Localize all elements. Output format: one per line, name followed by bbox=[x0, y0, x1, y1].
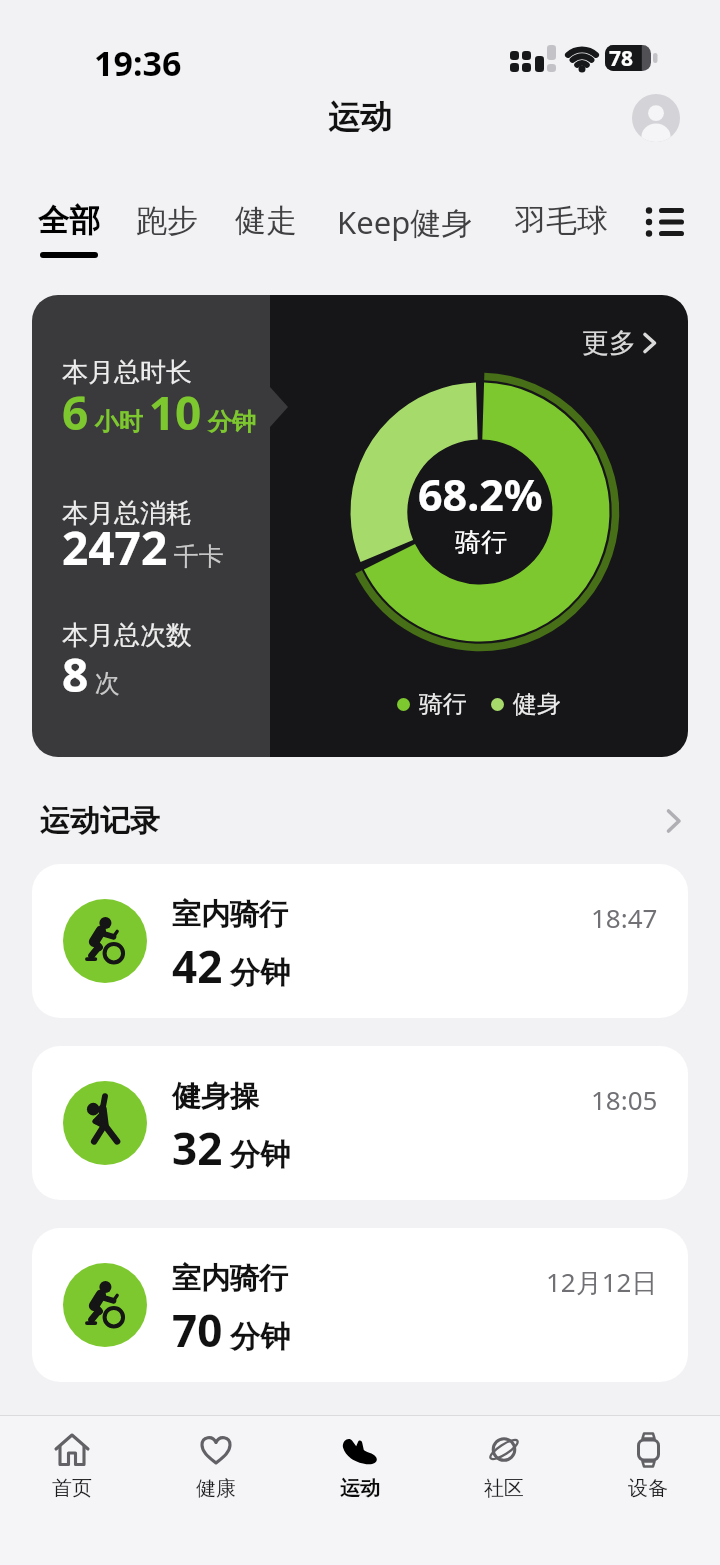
staticText: 68.2% bbox=[418, 465, 543, 524]
button[interactable]: 社区 bbox=[432, 1416, 576, 1565]
staticText: 12月12日 bbox=[546, 1264, 658, 1300]
staticText: 健身操 bbox=[172, 1078, 259, 1115]
button[interactable] bbox=[632, 94, 680, 142]
button[interactable]: 运动 bbox=[288, 1416, 432, 1565]
staticText: Keep健身 bbox=[337, 201, 473, 243]
button[interactable]: 全部 bbox=[38, 201, 100, 258]
staticText: 19:36 bbox=[94, 40, 182, 86]
button[interactable]: 首页 bbox=[0, 1416, 144, 1565]
staticText: 室内骑行 bbox=[172, 1260, 288, 1297]
staticText: 跑步 bbox=[136, 201, 198, 240]
staticText: 运动 bbox=[340, 1476, 380, 1501]
button[interactable]: 设备 bbox=[576, 1416, 720, 1565]
button[interactable]: 羽毛球 bbox=[515, 201, 608, 240]
staticText: 社区 bbox=[484, 1476, 524, 1501]
staticText: 70 分钟 bbox=[172, 1300, 291, 1360]
staticText: 羽毛球 bbox=[515, 201, 608, 240]
button[interactable]: 室内骑行 bbox=[32, 864, 688, 1018]
staticText: 首页 bbox=[52, 1476, 92, 1501]
button[interactable]: 健走 bbox=[235, 201, 297, 240]
staticText: 室内骑行 bbox=[172, 896, 288, 933]
staticText: 32 分钟 bbox=[172, 1118, 291, 1178]
staticText: 18:47 bbox=[591, 900, 658, 935]
staticText: 6 小时 10 分钟 bbox=[62, 381, 256, 444]
button[interactable]: 室内骑行 bbox=[32, 1228, 688, 1382]
staticText: 健身 bbox=[513, 689, 561, 719]
staticText: 设备 bbox=[628, 1476, 668, 1501]
button[interactable]: 跑步 bbox=[136, 201, 198, 240]
button[interactable]: 本月总时长 bbox=[32, 295, 688, 757]
button[interactable]: 健康 bbox=[144, 1416, 288, 1565]
staticText: 2472 千卡 bbox=[62, 516, 224, 579]
staticText: 健走 bbox=[235, 201, 297, 240]
staticText: 42 分钟 bbox=[172, 936, 291, 996]
button[interactable] bbox=[644, 206, 684, 240]
staticText: 运动记录 bbox=[40, 802, 160, 840]
button[interactable]: 健身操 bbox=[32, 1046, 688, 1200]
staticText: 18:05 bbox=[591, 1082, 658, 1117]
staticText: 本月总时长 bbox=[62, 356, 192, 389]
staticText: 更多 bbox=[582, 326, 636, 360]
staticText: 本月总消耗 bbox=[62, 497, 192, 530]
button[interactable]: Keep健身 bbox=[337, 201, 473, 243]
staticText: 8 次 bbox=[62, 643, 120, 706]
staticText: 全部 bbox=[38, 201, 100, 240]
staticText: 运动 bbox=[328, 97, 392, 137]
staticText: 骑行 bbox=[455, 526, 507, 559]
staticText: 骑行 bbox=[419, 689, 467, 719]
button[interactable]: 更多 bbox=[582, 326, 658, 360]
button[interactable]: 运动记录 bbox=[40, 802, 682, 840]
staticText: 健康 bbox=[196, 1476, 236, 1501]
staticText: 本月总次数 bbox=[62, 619, 192, 652]
staticText: 78 bbox=[609, 44, 634, 73]
